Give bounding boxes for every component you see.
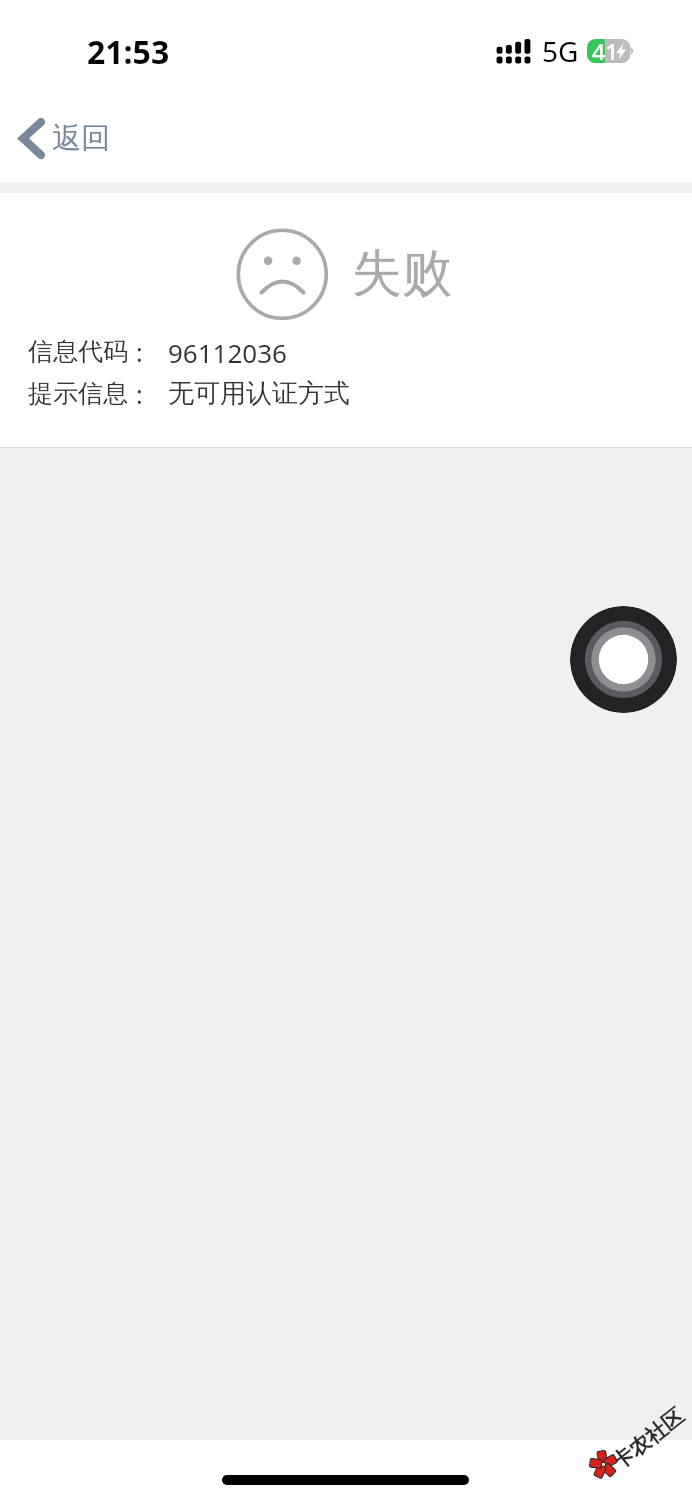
staticText: 卡农社区 bbox=[607, 1403, 689, 1475]
staticText: 21:53 bbox=[87, 30, 170, 74]
button[interactable]: 返回 bbox=[10, 107, 124, 170]
staticText: : bbox=[136, 335, 143, 369]
button[interactable]: Assistive touch bbox=[570, 606, 677, 713]
staticText: 返回 bbox=[52, 120, 110, 157]
staticText: : bbox=[136, 377, 143, 411]
staticText: 41 bbox=[592, 36, 619, 60]
staticText: 96112036 bbox=[168, 335, 287, 370]
staticText: 无可用认证方式 bbox=[168, 377, 350, 410]
staticText: 失败 bbox=[352, 242, 452, 305]
staticText: 信息代码 bbox=[28, 336, 128, 367]
staticText: 5G bbox=[542, 32, 579, 70]
staticText: 提示信息 bbox=[28, 378, 128, 409]
